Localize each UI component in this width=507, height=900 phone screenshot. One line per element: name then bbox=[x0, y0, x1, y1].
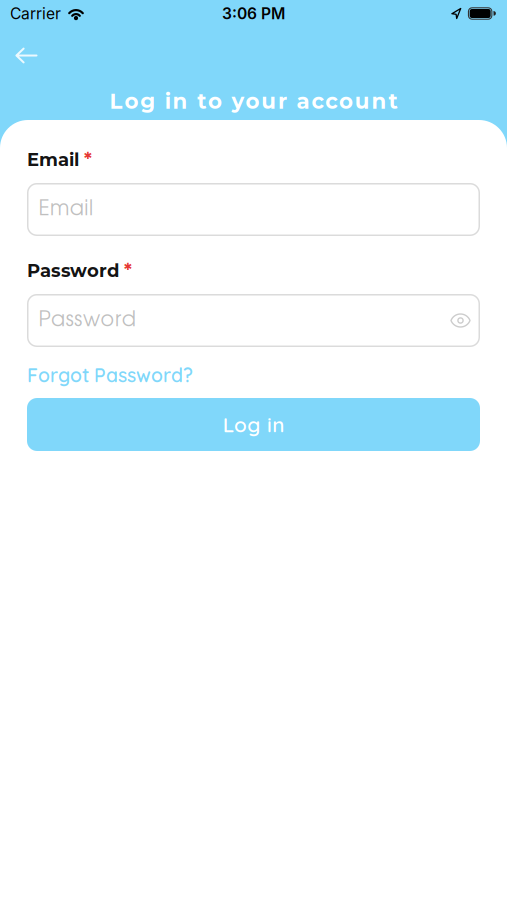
button[interactable] bbox=[0, 48, 37, 63]
staticText: Log in to your account bbox=[110, 88, 397, 114]
staticText: * bbox=[124, 258, 132, 280]
staticText: * bbox=[84, 147, 92, 169]
button[interactable]: Password bbox=[27, 294, 480, 347]
staticText: Email bbox=[27, 148, 79, 170]
button[interactable] bbox=[451, 314, 480, 327]
button[interactable]: Forgot Password? bbox=[27, 365, 193, 385]
button[interactable]: Email bbox=[27, 183, 480, 236]
staticText: 3:06 PM bbox=[222, 4, 285, 23]
staticText: Password bbox=[27, 259, 119, 281]
staticText: Email bbox=[38, 200, 93, 219]
staticText: Log in bbox=[223, 412, 284, 437]
button[interactable]: Log in bbox=[27, 398, 480, 451]
staticText: Carrier bbox=[10, 4, 61, 23]
staticText: Forgot Password? bbox=[27, 363, 193, 387]
staticText: Password bbox=[38, 311, 136, 330]
